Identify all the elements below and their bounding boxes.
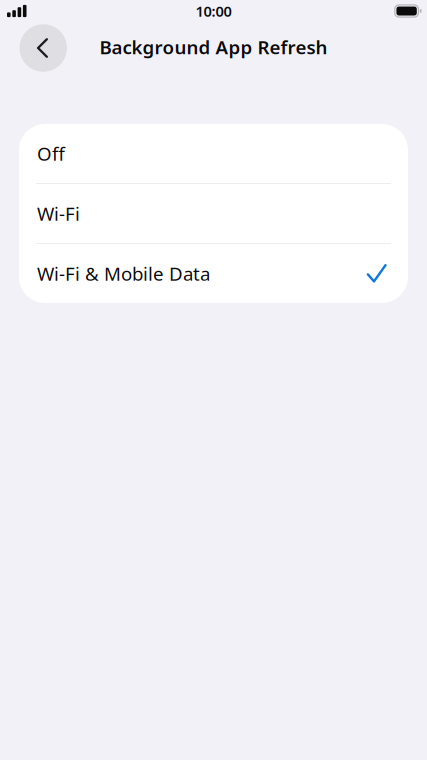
- staticText: Wi-Fi & Mobile Data: [37, 261, 210, 286]
- staticText: 10:00: [195, 1, 231, 21]
- button[interactable]: Off: [19, 124, 408, 183]
- button[interactable]: Back: [19, 24, 67, 72]
- button[interactable]: Wi-Fi & Mobile Data: [19, 244, 408, 303]
- staticText: Off: [37, 141, 65, 166]
- button[interactable]: Wi-Fi: [19, 184, 408, 243]
- staticText: Background App Refresh: [99, 35, 327, 59]
- staticText: Wi-Fi: [37, 201, 80, 226]
